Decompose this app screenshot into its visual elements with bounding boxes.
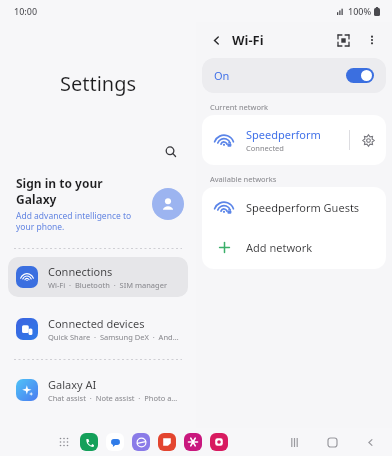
staticText: Connections [48,264,113,279]
button[interactable]: Connections [8,257,188,297]
staticText: 10:00 [14,5,38,17]
staticText: Settings [60,70,137,97]
staticText: Connected [246,143,284,153]
button[interactable]: More options [362,30,382,50]
button[interactable]: Add network [202,227,386,269]
button[interactable]: Network settings [350,123,386,157]
staticText: Current network [210,102,269,112]
button[interactable]: Camera [210,433,228,451]
button[interactable]: Galaxy AI [8,370,188,410]
button[interactable]: Speedperform Guests [202,187,386,227]
staticText: Add advanced intelligence to your phone. [16,210,146,232]
staticText: Available networks [210,174,277,184]
button[interactable]: Search [160,141,182,163]
staticText: Wi-Fi [232,31,264,49]
button[interactable]: Back [206,30,226,50]
button[interactable]: Messages [106,433,124,451]
staticText: Speedperform [246,127,321,142]
staticText: Quick Share · Samsung DeX · Android Auto [48,332,180,342]
staticText: Speedperform Guests [246,200,360,215]
button[interactable]: Home [324,434,340,450]
staticText: Add network [246,240,313,255]
button[interactable]: Phone [80,433,98,451]
button[interactable]: On [202,58,386,93]
staticText: Sign in to your Galaxy [16,175,146,207]
staticText: Wi-Fi · Bluetooth · SIM manager [48,280,167,290]
staticText: On [214,68,230,83]
button[interactable]: Sign in to your Galaxy [0,171,196,238]
button[interactable]: Recents [286,434,302,450]
staticText: Galaxy AI [48,377,97,392]
staticText: Connected devices [48,316,145,331]
staticText: Chat assist · Note assist · Photo assist [48,393,180,403]
button[interactable]: Speedperform [202,115,386,165]
button[interactable]: Apps [56,434,72,450]
button[interactable]: Gallery [184,433,202,451]
staticText: 100% [348,5,372,17]
button[interactable]: Connected devices [8,309,188,349]
button[interactable]: Notes [158,433,176,451]
button[interactable]: Back [362,434,378,450]
button[interactable]: Internet [132,433,150,451]
button[interactable]: Scan QR code [332,29,354,51]
